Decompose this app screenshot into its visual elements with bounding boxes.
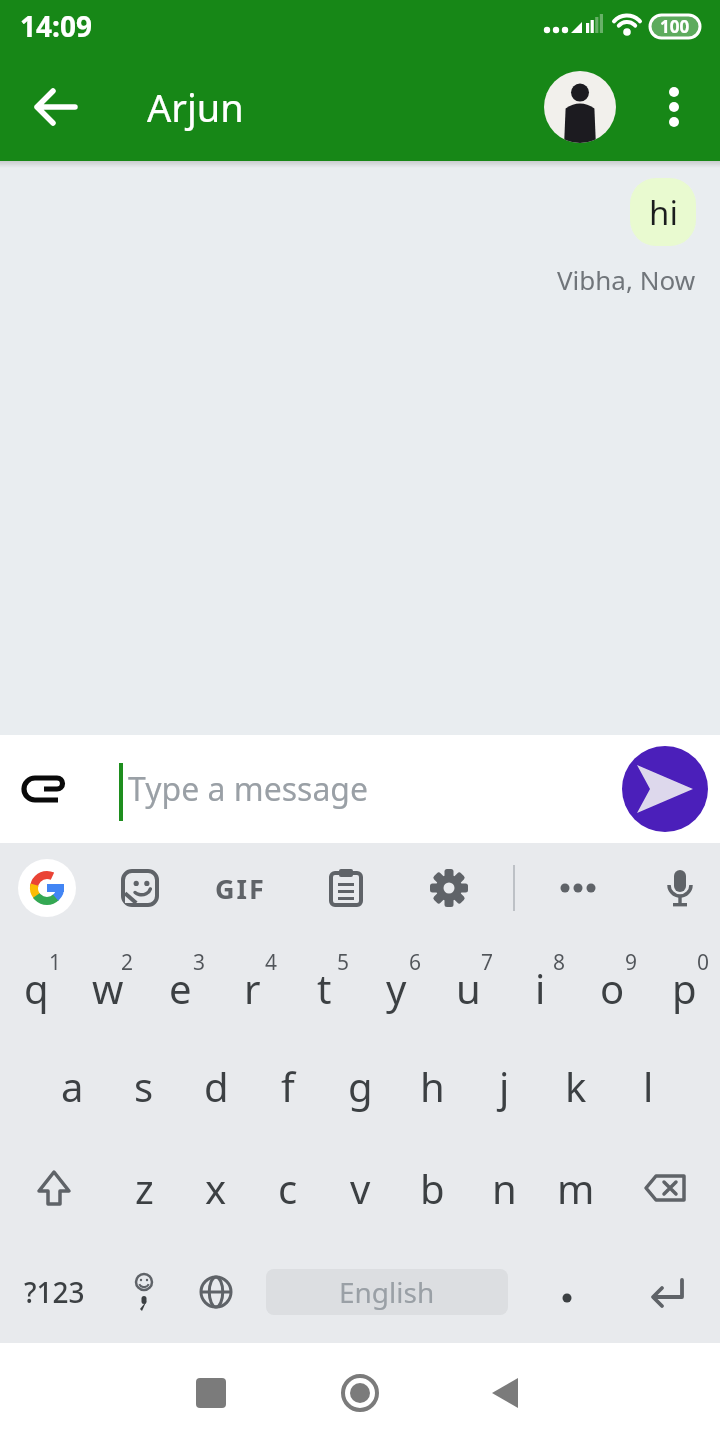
staticText: d <box>204 1059 229 1113</box>
button[interactable] <box>240 1343 480 1440</box>
button[interactable] <box>0 1343 240 1440</box>
button[interactable]: x <box>180 1136 252 1240</box>
staticText: 2 <box>121 948 134 977</box>
button[interactable]: a <box>36 1036 108 1136</box>
button[interactable] <box>544 71 616 143</box>
staticText: z <box>135 1161 154 1215</box>
button[interactable] <box>180 1240 252 1343</box>
staticText: Type a message <box>128 767 369 811</box>
button[interactable] <box>652 860 708 916</box>
staticText: w <box>92 961 124 1015</box>
staticText: v <box>350 1161 371 1215</box>
button[interactable]: q <box>0 932 72 1036</box>
staticText: 0 <box>697 948 710 977</box>
button[interactable]: hi <box>630 178 696 246</box>
staticText: j <box>499 1059 510 1113</box>
staticText: b <box>420 1161 445 1215</box>
button[interactable] <box>0 1136 108 1240</box>
button[interactable]: c <box>252 1136 324 1240</box>
staticText: a <box>61 1059 84 1113</box>
button[interactable] <box>108 1240 180 1343</box>
button[interactable] <box>612 1136 720 1240</box>
staticText: u <box>456 961 481 1015</box>
button[interactable]: English <box>266 1269 508 1315</box>
button[interactable]: b <box>396 1136 468 1240</box>
button[interactable] <box>26 78 84 136</box>
button[interactable]: j <box>468 1036 540 1136</box>
staticText: 9 <box>625 948 638 977</box>
staticText: f <box>281 1059 295 1113</box>
staticText: o <box>600 961 625 1015</box>
button[interactable]: s <box>108 1036 180 1136</box>
button[interactable]: l <box>612 1036 684 1136</box>
button[interactable] <box>18 859 76 917</box>
staticText: k <box>565 1059 587 1113</box>
button[interactable]: ?123 <box>0 1240 108 1343</box>
staticText: 3 <box>193 948 206 977</box>
staticText: 100 <box>660 15 690 38</box>
button[interactable]: u <box>432 932 504 1036</box>
staticText: q <box>24 961 49 1015</box>
staticText: i <box>535 961 546 1015</box>
button[interactable]: h <box>396 1036 468 1136</box>
button[interactable]: o <box>576 932 648 1036</box>
button[interactable]: k <box>540 1036 612 1136</box>
button[interactable]: w <box>72 932 144 1036</box>
button[interactable]: p <box>648 932 720 1036</box>
button[interactable] <box>622 746 708 832</box>
button[interactable] <box>318 860 374 916</box>
button[interactable]: v <box>324 1136 396 1240</box>
staticText: Vibha, Now <box>557 262 696 297</box>
button[interactable]: z <box>108 1136 180 1240</box>
button[interactable]: i <box>504 932 576 1036</box>
staticText: h <box>420 1059 445 1113</box>
staticText: 8 <box>553 948 566 977</box>
button[interactable] <box>421 860 477 916</box>
staticText: GIF <box>215 870 266 907</box>
staticText: 7 <box>481 948 494 977</box>
staticText: English <box>339 1273 435 1311</box>
staticText: 14:09 <box>20 7 92 45</box>
staticText: x <box>205 1161 227 1215</box>
staticText: p <box>672 961 697 1015</box>
button[interactable]: d <box>180 1036 252 1136</box>
staticText: s <box>134 1059 154 1113</box>
button[interactable]: t <box>288 932 360 1036</box>
staticText: m <box>557 1161 595 1215</box>
staticText: 4 <box>265 948 278 977</box>
button[interactable]: n <box>468 1136 540 1240</box>
staticText: e <box>169 961 192 1015</box>
button[interactable] <box>646 79 702 135</box>
staticText: 1 <box>49 948 62 977</box>
button[interactable]: r <box>216 932 288 1036</box>
button[interactable] <box>14 761 70 817</box>
button[interactable] <box>522 1240 612 1343</box>
staticText: l <box>643 1059 654 1113</box>
staticText: t <box>317 961 332 1015</box>
staticText: c <box>278 1161 298 1215</box>
staticText: ?123 <box>24 1273 85 1311</box>
staticText: n <box>492 1161 517 1215</box>
button[interactable] <box>480 1343 720 1440</box>
staticText: 5 <box>337 948 350 977</box>
staticText: g <box>348 1059 373 1113</box>
staticText: r <box>244 961 261 1015</box>
staticText: y <box>386 961 407 1015</box>
button[interactable] <box>612 1240 720 1343</box>
staticText: hi <box>649 190 678 235</box>
staticText: 6 <box>409 948 422 977</box>
button[interactable]: y <box>360 932 432 1036</box>
button[interactable]: g <box>324 1036 396 1136</box>
staticText: Arjun <box>147 81 244 133</box>
button[interactable] <box>112 860 168 916</box>
button[interactable]: f <box>252 1036 324 1136</box>
button[interactable]: e <box>144 932 216 1036</box>
button[interactable]: GIF <box>204 852 276 924</box>
button[interactable] <box>550 860 606 916</box>
button[interactable]: m <box>540 1136 612 1240</box>
